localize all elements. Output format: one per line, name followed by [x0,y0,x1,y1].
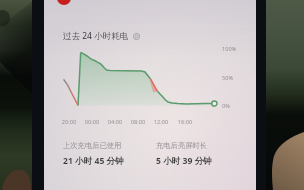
staticText: 充电后亮屏时长 [156,141,208,150]
staticText: 21 小时 45 分钟 [63,155,124,167]
other: Notification badge [57,0,71,5]
staticText: 100% [222,45,237,53]
staticText: 04:00 [106,118,124,126]
staticText: 50% [222,74,234,82]
button[interactable]: 过去 24 小时耗电 [63,29,140,43]
staticText: 00:00 [83,118,101,126]
staticText: 08:00 [129,118,147,126]
staticText: 20:00 [60,118,78,126]
staticText: 16:00 [176,118,194,126]
staticText: 5 小时 39 分钟 [156,155,212,167]
staticText: 12:00 [152,118,170,126]
staticText: 过去 24 小时耗电 [63,30,129,42]
staticText: 上次充电后已使用 [63,141,122,150]
staticText: 0% [222,102,230,110]
